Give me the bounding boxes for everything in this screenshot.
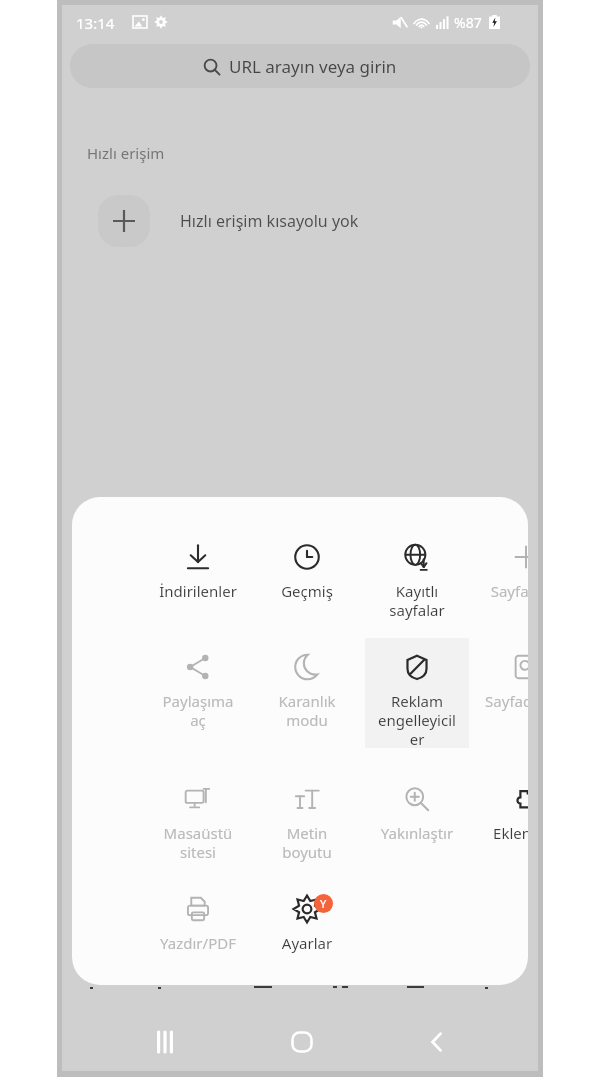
button[interactable]: Home — [285, 1025, 319, 1059]
staticText: Eklentiler — [474, 823, 528, 843]
staticText: Geçmiş — [255, 581, 359, 601]
staticText: Karanlık modu — [255, 691, 359, 730]
button[interactable]: Geçmiş — [255, 528, 359, 632]
button[interactable]: Recent apps — [150, 1027, 180, 1057]
button[interactable]: Masaüstü sitesi — [146, 770, 250, 874]
button[interactable]: İndirilenler — [146, 528, 250, 632]
button[interactable]: Paylaşıma aç — [146, 638, 250, 742]
button[interactable]: Yakınlaştır — [365, 770, 469, 874]
button[interactable]: Yazdır/PDF — [146, 880, 250, 984]
button[interactable]: URL arayın veya girin — [70, 44, 530, 88]
staticText: Yakınlaştır — [365, 823, 469, 843]
staticText: Kayıtlı sayfalar — [365, 581, 469, 620]
button[interactable]: Y — [474, 770, 528, 874]
staticText: URL arayın veya girin — [229, 55, 397, 78]
staticText: Reklam engelleyicil er — [365, 691, 469, 748]
staticText: İndirilenler — [146, 581, 250, 601]
button[interactable]: Back — [420, 1025, 454, 1059]
staticText: Hızlı erişim kısayolu yok — [180, 210, 359, 232]
button[interactable]: Y — [255, 880, 359, 984]
button[interactable]: Metin boyutu — [255, 770, 359, 874]
staticText: Sayfada bul — [474, 691, 528, 711]
staticText: Yazdır/PDF — [146, 933, 250, 953]
staticText: Paylaşıma aç — [146, 691, 250, 730]
button[interactable]: Hızlı erişim kısayolu ekle — [98, 195, 150, 247]
staticText: Masaüstü sitesi — [146, 823, 250, 862]
staticText: 13:14 — [76, 13, 115, 33]
button[interactable]: Reklam engelleyicil er — [365, 638, 469, 748]
staticText: Ayarlar — [255, 933, 359, 953]
staticText: Hızlı erişim — [87, 143, 165, 163]
button[interactable]: Karanlık modu — [255, 638, 359, 742]
button[interactable]: Sayfa ekle — [474, 528, 528, 632]
button[interactable]: Kayıtlı sayfalar — [365, 528, 469, 632]
staticText: Y — [320, 896, 327, 911]
staticText: Metin boyutu — [255, 823, 359, 862]
staticText: %87 — [454, 13, 482, 32]
button[interactable]: Sayfada bul — [474, 638, 528, 742]
staticText: Sayfa ekle — [474, 581, 528, 601]
